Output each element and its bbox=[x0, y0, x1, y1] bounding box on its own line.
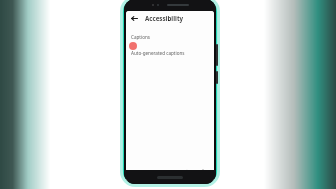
button[interactable]: Profile bbox=[195, 166, 210, 181]
button[interactable]: Search bbox=[146, 166, 161, 181]
staticText: Captions bbox=[131, 34, 150, 40]
button[interactable]: Back bbox=[130, 14, 139, 23]
button[interactable]: Home bbox=[130, 166, 145, 181]
staticText: Auto-generated captions bbox=[131, 50, 185, 56]
button[interactable]: Shop bbox=[179, 166, 194, 181]
button[interactable]: Auto-generated captions bbox=[126, 47, 214, 58]
button[interactable]: Reels bbox=[163, 166, 178, 181]
staticText: Accessibility bbox=[145, 14, 184, 22]
